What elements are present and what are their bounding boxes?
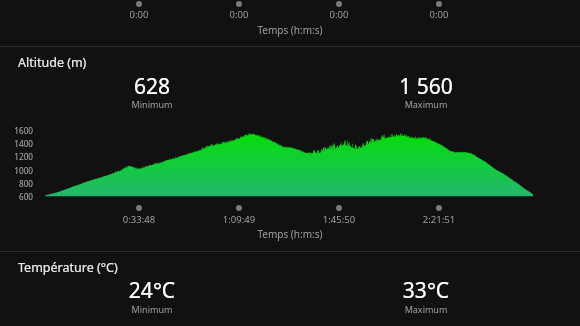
staticText: 1:09:49 (194, 213, 284, 226)
staticText: Minimum (72, 98, 232, 110)
staticText: 0:00 (194, 8, 284, 21)
staticText: 0:00 (294, 8, 384, 21)
staticText: 2:21:51 (394, 213, 484, 226)
staticText: 600 (0, 191, 33, 202)
button[interactable]: 628 (72, 72, 232, 113)
staticText: 33°C (346, 276, 506, 305)
staticText: 24°C (72, 276, 232, 305)
staticText: 1 560 (346, 72, 506, 101)
staticText: Altitude (m) (18, 54, 87, 71)
staticText: Temps (h:m:s) (0, 23, 580, 37)
button[interactable]: Altitude (m) (16, 52, 85, 69)
staticText: 0:00 (394, 8, 484, 21)
staticText: 628 (72, 72, 232, 101)
staticText: Temps (h:m:s) (0, 227, 580, 241)
button[interactable]: Température (°C) (16, 257, 116, 274)
staticText: 1400 (0, 138, 33, 149)
staticText: 1200 (0, 151, 33, 162)
staticText: Maximum (346, 303, 506, 315)
button[interactable]: 1 560 (346, 72, 506, 113)
staticText: 0:00 (94, 8, 184, 21)
staticText: 1600 (0, 125, 33, 136)
button[interactable]: 24°C (72, 276, 232, 318)
staticText: Température (°C) (18, 259, 118, 276)
button[interactable]: 33°C (346, 276, 506, 318)
staticText: 800 (0, 178, 33, 189)
staticText: Maximum (346, 98, 506, 110)
staticText: 0:33:48 (94, 213, 184, 226)
staticText: 1000 (0, 165, 33, 176)
staticText: Minimum (72, 303, 232, 315)
staticText: 1:45:50 (294, 213, 384, 226)
